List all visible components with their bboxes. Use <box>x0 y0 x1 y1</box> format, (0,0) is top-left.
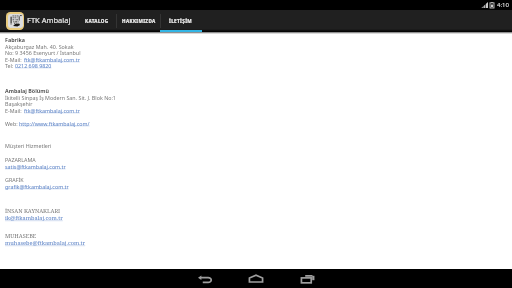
button[interactable]: KATALOG <box>77 10 116 32</box>
button[interactable]: Recent apps <box>292 269 324 288</box>
staticText: E-Mail: <box>5 56 24 63</box>
staticText: PAZARLAMA <box>5 156 36 163</box>
staticText: MUHASEBE <box>5 232 37 240</box>
staticText: GRAFİK <box>5 176 24 183</box>
button[interactable]: ik@ftkambalaj.com.tr <box>5 214 63 222</box>
staticText: FTK Ambalaj <box>27 15 71 25</box>
button[interactable]: FTK Ambalaj logo <box>6 12 24 30</box>
button[interactable]: ftk@ftkambalaj.com.tr <box>24 107 80 114</box>
staticText: ftk@ftkambalaj.com.tr <box>24 107 80 114</box>
staticText: Ambalaj Bölümü <box>5 87 49 94</box>
staticText: İkitelli Sinpaş İş Modern San. Sit. J. B… <box>5 94 116 101</box>
button[interactable]: Home <box>240 269 272 288</box>
button[interactable]: satis@ftkambalaj.com.tr <box>5 163 66 170</box>
staticText: İNSAN KAYNAKLARI <box>5 207 61 215</box>
button[interactable]: İLETİŞİM <box>160 10 202 32</box>
staticText: ik@ftkambalaj.com.tr <box>5 214 63 222</box>
staticText: Akçaburgaz Mah. 40. Sokak <box>5 43 74 50</box>
staticText: No: 9 3456 Esenyurt / İstanbul <box>5 49 81 56</box>
staticText: HAKKIMIZDA <box>122 18 156 24</box>
button[interactable]: ftk@ftkambalaj.com.tr <box>24 56 80 63</box>
staticText: Müşteri Hizmetleri <box>5 142 52 149</box>
staticText: grafik@ftkambalaj.com.tr <box>5 183 69 190</box>
staticText: http://www.ftkambalaj.com/ <box>19 120 90 127</box>
staticText: Tel: <box>5 62 15 69</box>
staticText: İLETİŞİM <box>169 18 193 24</box>
button[interactable]: Back <box>189 269 221 288</box>
button[interactable]: http://www.ftkambalaj.com/ <box>19 120 90 127</box>
staticText: satis@ftkambalaj.com.tr <box>5 163 66 170</box>
button[interactable]: HAKKIMIZDA <box>117 10 160 32</box>
staticText: KATALOG <box>85 18 109 24</box>
staticText: ftk@ftkambalaj.com.tr <box>24 56 80 63</box>
button[interactable]: grafik@ftkambalaj.com.tr <box>5 183 69 190</box>
staticText: 0212 698 9820 <box>15 62 52 69</box>
staticText: Fabrika <box>5 36 26 43</box>
button[interactable]: muhasebe@ftkambalaj.com.tr <box>5 239 86 247</box>
staticText: 4:10 <box>497 1 509 9</box>
staticText: E-Mail: <box>5 107 24 114</box>
staticText: Web: <box>5 120 19 127</box>
button[interactable]: 0212 698 9820 <box>15 62 52 69</box>
staticText: muhasebe@ftkambalaj.com.tr <box>5 239 86 247</box>
staticText: Başakşehir <box>5 100 33 107</box>
